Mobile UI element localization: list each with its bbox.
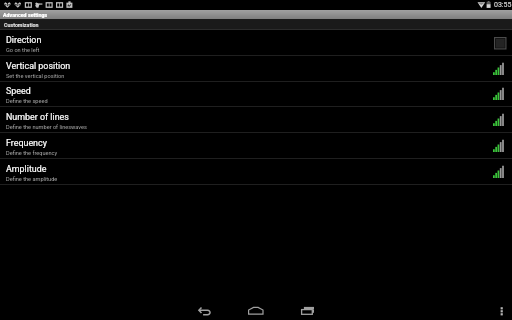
button[interactable]: Vertical position	[0, 56, 512, 82]
staticText: Define the frequency	[6, 150, 58, 157]
staticText: Define the number of lineswaves	[6, 124, 87, 131]
button[interactable]: Amplitude	[0, 159, 512, 185]
staticText: 03:55	[494, 1, 512, 9]
staticText: Direction	[6, 35, 42, 45]
staticText: Amplitude	[6, 164, 47, 174]
button[interactable]: Back	[185, 298, 225, 320]
button[interactable]: Number of lines	[0, 107, 512, 133]
staticText: Go on the left	[6, 47, 40, 54]
button[interactable]: More options	[490, 298, 512, 320]
staticText: Frequency	[6, 138, 47, 148]
staticText: Vertical position	[6, 61, 71, 71]
staticText: Define the amplitude	[6, 176, 58, 183]
staticText: Define the speed	[6, 98, 48, 105]
button[interactable]: Direction	[0, 30, 512, 56]
staticText: Number of lines	[6, 112, 69, 122]
button[interactable]: Home	[236, 298, 276, 320]
button[interactable]: Speed	[0, 81, 512, 107]
staticText: Advanced settings	[3, 12, 48, 18]
staticText: Customization	[4, 22, 39, 28]
button[interactable]: Recent apps	[288, 298, 328, 320]
staticText: Speed	[6, 86, 31, 96]
staticText: Set the vertical position	[6, 73, 65, 80]
button[interactable]: Frequency	[0, 133, 512, 159]
